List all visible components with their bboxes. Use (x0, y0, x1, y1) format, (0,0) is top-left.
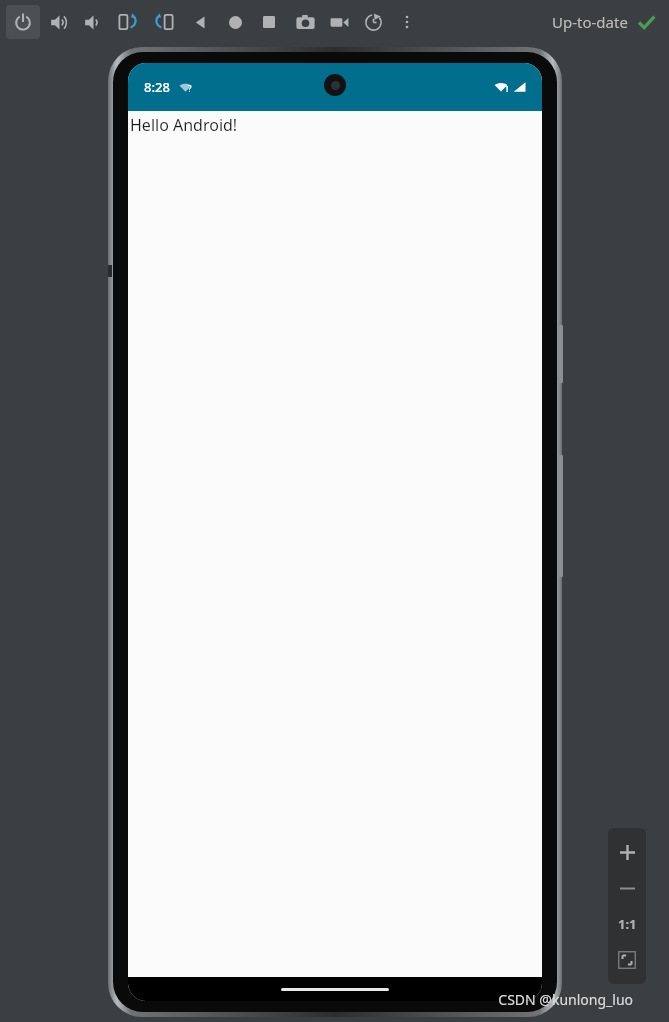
button[interactable]: Back (184, 5, 218, 39)
button[interactable]: Volume up (42, 5, 76, 39)
staticText: CSDN @kunlong_luo (498, 990, 633, 1009)
button[interactable]: Record screen (322, 5, 356, 39)
button[interactable]: 1:1 (609, 906, 645, 942)
staticText: 1:1 (618, 915, 637, 933)
button[interactable]: Rotate left (112, 5, 146, 39)
button[interactable]: Up-to-date (552, 12, 655, 32)
button[interactable]: Volume down (76, 5, 110, 39)
button[interactable]: Rotate right (146, 5, 180, 39)
staticText: Hello Android! (130, 114, 238, 136)
button[interactable]: Zoom out (609, 870, 645, 906)
staticText: ? (188, 83, 192, 94)
button[interactable]: Zoom in (609, 834, 645, 870)
button[interactable]: Power (6, 5, 40, 39)
button[interactable]: Take screenshot (288, 5, 322, 39)
button[interactable]: Overview (252, 5, 286, 39)
staticText: Up-to-date (552, 12, 628, 32)
button[interactable]: Rotate history (356, 5, 390, 39)
button[interactable]: Home gesture (281, 988, 389, 991)
button[interactable]: Fit to screen (609, 942, 645, 978)
staticText: 8:28 (144, 78, 170, 96)
button[interactable]: More (392, 7, 422, 37)
button[interactable]: Home (218, 5, 252, 39)
staticText: ! (506, 83, 509, 94)
